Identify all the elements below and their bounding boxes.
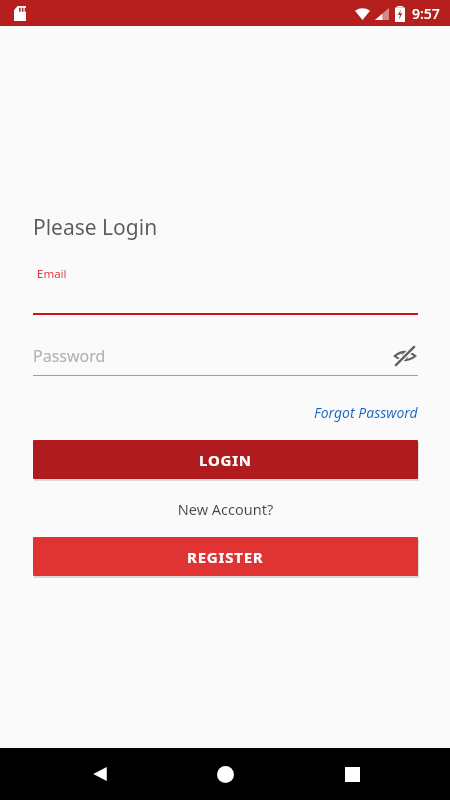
- button[interactable]: REGISTER: [33, 537, 418, 576]
- staticText: Email: [37, 266, 67, 282]
- button[interactable]: Home: [203, 752, 247, 796]
- staticText: LOGIN: [199, 450, 252, 470]
- button[interactable]: Password: [33, 343, 418, 376]
- staticText: Please Login: [33, 213, 158, 242]
- staticText: 9:57: [412, 4, 440, 23]
- staticText: Password: [33, 345, 392, 367]
- staticText: New Account?: [33, 499, 418, 519]
- button[interactable]: Email: [33, 266, 418, 315]
- button[interactable]: Back: [78, 752, 122, 796]
- button[interactable]: Recent apps: [330, 752, 374, 796]
- staticText: REGISTER: [187, 547, 264, 567]
- button[interactable]: Show password: [392, 343, 418, 369]
- staticText: Forgot Password: [314, 403, 418, 422]
- button[interactable]: LOGIN: [33, 440, 418, 479]
- button[interactable]: Forgot Password: [314, 403, 418, 422]
